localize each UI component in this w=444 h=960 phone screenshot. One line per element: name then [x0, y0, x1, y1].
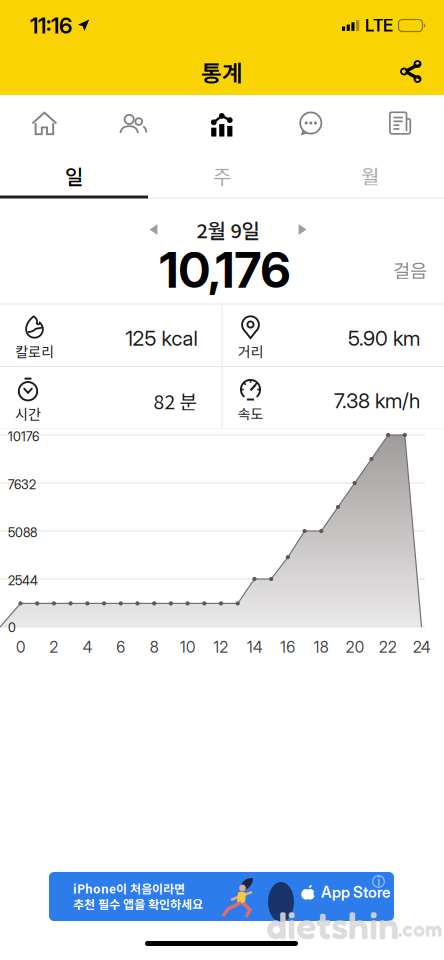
button[interactable]: 일	[0, 152, 148, 198]
staticText: 5.90 km	[348, 326, 420, 351]
staticText: 7.38 km/h	[334, 388, 420, 413]
staticText: 4	[83, 638, 92, 657]
staticText: .com	[398, 916, 442, 942]
staticText: 일	[65, 161, 83, 190]
staticText: 2544	[8, 573, 38, 588]
staticText: 걸음	[393, 256, 427, 283]
staticText: iPhone이 처음이라면	[73, 879, 185, 897]
staticText: i	[377, 873, 380, 889]
staticText: 0	[16, 638, 25, 657]
staticText: 12	[213, 638, 228, 657]
button[interactable]: 이전 날짜	[149, 223, 158, 235]
staticText: 칼로리	[15, 341, 54, 361]
staticText: 8	[150, 638, 159, 657]
button[interactable]: 주	[148, 152, 296, 198]
button[interactable]: 공유	[400, 59, 444, 83]
staticText: 10	[180, 638, 195, 657]
staticText: 20	[346, 638, 364, 657]
button[interactable]: 친구	[89, 95, 178, 152]
staticText: 14	[247, 638, 262, 657]
staticText: 24	[413, 638, 430, 657]
button[interactable]: App Store 광고	[49, 872, 394, 921]
staticText: 2	[49, 638, 58, 657]
staticText: LTE	[365, 15, 393, 36]
staticText: 거리	[237, 341, 263, 361]
staticText: 속도	[237, 403, 263, 423]
staticText: 18	[314, 638, 329, 657]
staticText: 주	[213, 161, 231, 190]
staticText: 125 kcal	[125, 326, 197, 351]
staticText: 16	[280, 638, 295, 657]
staticText: 22	[379, 638, 397, 657]
staticText: dietshin	[266, 903, 399, 948]
staticText: 시간	[15, 404, 41, 424]
staticText: 10,176	[159, 241, 290, 299]
staticText: 0	[8, 620, 16, 635]
staticText: App Store	[321, 883, 390, 902]
staticText: 2월 9일	[196, 215, 259, 244]
button[interactable]: 채팅	[266, 95, 355, 152]
staticText: 6	[116, 638, 125, 657]
button[interactable]: 다음 날짜	[298, 223, 307, 235]
staticText: 82 분	[153, 387, 197, 415]
staticText: 5088	[8, 525, 37, 540]
button[interactable]: 월	[296, 152, 444, 198]
staticText: 10176	[8, 429, 39, 444]
staticText: 11:16	[30, 12, 72, 39]
button[interactable]: 홈	[0, 95, 89, 152]
staticText: 7632	[8, 477, 36, 492]
button[interactable]: 뉴스	[355, 95, 444, 152]
staticText: 통계	[201, 55, 243, 88]
staticText: 추천 필수 앱을 확인하세요	[73, 895, 203, 912]
staticText: 월	[361, 161, 379, 190]
button[interactable]: 통계	[178, 95, 266, 152]
